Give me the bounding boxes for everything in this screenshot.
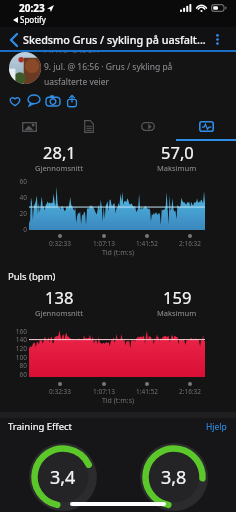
staticText: 0 [7, 225, 27, 234]
staticText: 1:41:52 [131, 239, 163, 248]
staticText: Hjelp [206, 421, 227, 433]
staticText: 57,0 [161, 141, 194, 163]
staticText: 20 [7, 209, 27, 218]
button[interactable]: Details [59, 112, 118, 141]
staticText: Tid (t:m:s) [0, 396, 236, 406]
staticText: 3,4 [50, 465, 76, 490]
button[interactable]: Hjelp [206, 421, 227, 433]
staticText: Maksimum [157, 163, 197, 173]
button[interactable]: Laps [118, 112, 177, 141]
staticText: Arne Olsen [44, 42, 100, 56]
staticText: Skedsmo Grus / sykling på uasfalt... [23, 32, 206, 47]
staticText: 28,1 [43, 141, 76, 163]
staticText: 2:16:32 [174, 387, 206, 396]
staticText: Puls (bpm) [8, 270, 56, 283]
staticText: 0:32:33 [44, 387, 76, 396]
staticText: 1:07:13 [88, 239, 120, 248]
button[interactable]: Map [0, 112, 59, 141]
staticText: uasfalterte veier [44, 76, 110, 88]
staticText: Spotify [20, 14, 46, 25]
staticText: Gjennomsnitt [35, 308, 84, 318]
staticText: 80 [7, 361, 27, 370]
staticText: 60 [7, 177, 27, 186]
staticText: 159 [163, 286, 192, 308]
staticText: 160 [7, 327, 27, 336]
staticText: 1:07:13 [88, 387, 120, 396]
staticText: 20:23 [19, 1, 45, 15]
button[interactable]: Back [3, 27, 23, 52]
staticText: 2:16:32 [174, 239, 206, 248]
button[interactable]: Charts [177, 112, 236, 141]
button[interactable]: Share [62, 91, 81, 110]
staticText: 138 [45, 286, 74, 308]
button[interactable]: Training Effect [8, 420, 72, 433]
button[interactable]: 3,4 [29, 443, 97, 511]
staticText: Maksimum [157, 308, 197, 318]
staticText: Tid (t:m:s) [0, 248, 236, 258]
button[interactable]: More options [209, 27, 226, 52]
staticText: 9. jul. @ 16:56 · Grus / sykling på [44, 61, 173, 73]
staticText: 3,8 [161, 465, 187, 490]
staticText: Training Effect [8, 420, 72, 433]
button[interactable]: Comment [24, 91, 43, 110]
staticText: 1:41:52 [131, 387, 163, 396]
staticText: 100 [7, 353, 27, 362]
staticText: 0:32:33 [44, 239, 76, 248]
button[interactable]: Like [5, 91, 24, 110]
button[interactable]: Photo [43, 91, 62, 110]
staticText: 40 [7, 193, 27, 202]
staticText: Gjennomsnitt [35, 163, 84, 173]
staticText: 120 [7, 344, 27, 353]
button[interactable]: 3,8 [140, 443, 208, 511]
staticText: 140 [7, 335, 27, 344]
staticText: 60 [7, 370, 27, 379]
